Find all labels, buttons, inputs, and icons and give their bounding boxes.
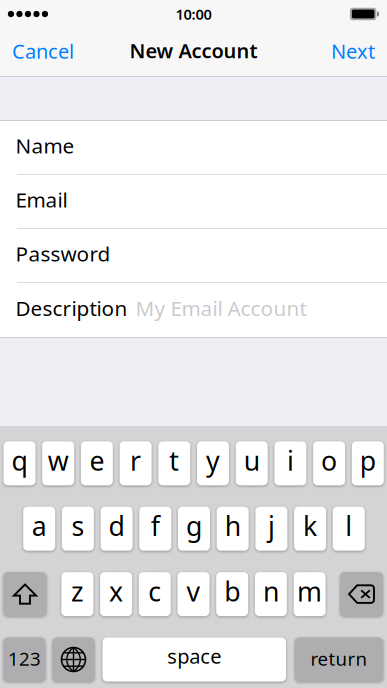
staticText: g — [186, 507, 202, 544]
button[interactable]: c — [139, 572, 171, 616]
staticText: p — [360, 442, 376, 478]
button[interactable]: Name — [0, 121, 387, 175]
staticText: Name — [15, 131, 74, 159]
staticText: return — [310, 646, 367, 671]
staticText: h — [225, 507, 241, 544]
staticText: b — [224, 573, 240, 609]
staticText: e — [89, 442, 104, 478]
button[interactable]: a — [23, 507, 55, 551]
staticText: Description — [15, 294, 127, 322]
staticText: w — [48, 442, 69, 478]
button[interactable]: w — [42, 441, 74, 485]
staticText: u — [244, 442, 260, 478]
button[interactable]: r — [120, 441, 152, 485]
button[interactable]: n — [255, 572, 287, 616]
button[interactable]: l — [333, 507, 365, 551]
button[interactable]: b — [216, 572, 248, 616]
button[interactable]: Cancel — [4, 31, 82, 74]
staticText: o — [321, 442, 337, 478]
button[interactable]: d — [101, 507, 133, 551]
staticText: a — [32, 507, 47, 544]
button[interactable]: j — [255, 507, 287, 551]
button[interactable]: Shift — [3, 572, 46, 616]
button[interactable]: x — [100, 572, 132, 616]
button[interactable]: i — [274, 441, 306, 485]
staticText: q — [11, 442, 27, 478]
button[interactable]: Password — [0, 229, 387, 283]
button[interactable]: return — [295, 637, 383, 681]
staticText: Email — [15, 185, 67, 213]
button[interactable]: v — [177, 572, 209, 616]
button[interactable]: q — [3, 441, 35, 485]
button[interactable]: o — [313, 441, 345, 485]
staticText: j — [268, 507, 275, 544]
button[interactable]: m — [294, 572, 326, 616]
staticText: Password — [15, 239, 110, 267]
staticText: k — [303, 507, 317, 544]
staticText: n — [263, 573, 279, 609]
staticText: y — [206, 442, 220, 478]
button[interactable]: f — [139, 507, 171, 551]
button[interactable]: p — [352, 441, 384, 485]
staticText: t — [169, 442, 179, 478]
staticText: v — [186, 573, 200, 609]
staticText: My Email Account — [135, 294, 306, 322]
staticText: z — [71, 573, 84, 609]
staticText: 123 — [8, 646, 41, 671]
button[interactable]: e — [81, 441, 113, 485]
staticText: Cancel — [12, 37, 74, 65]
staticText: i — [287, 442, 294, 478]
button[interactable]: Description — [0, 283, 387, 337]
staticText: d — [109, 507, 125, 544]
button[interactable]: s — [62, 507, 94, 551]
staticText: l — [345, 507, 352, 544]
button[interactable]: g — [178, 507, 210, 551]
staticText: space — [167, 642, 221, 670]
button[interactable]: u — [236, 441, 268, 485]
button[interactable]: Next keyboard — [52, 637, 94, 681]
button[interactable]: Next — [323, 31, 383, 74]
button[interactable]: k — [294, 507, 326, 551]
button[interactable]: space — [102, 637, 286, 681]
button[interactable]: Delete — [340, 572, 383, 616]
button[interactable]: t — [158, 441, 190, 485]
staticText: New Account — [129, 37, 257, 64]
staticText: s — [71, 507, 84, 544]
staticText: f — [151, 507, 160, 544]
button[interactable]: h — [217, 507, 249, 551]
button[interactable]: y — [197, 441, 229, 485]
staticText: r — [130, 442, 141, 478]
button[interactable]: Email — [0, 175, 387, 229]
staticText: x — [109, 573, 123, 609]
staticText: c — [148, 573, 161, 609]
button[interactable]: 123 — [3, 637, 45, 681]
staticText: 10:00 — [175, 4, 211, 24]
staticText: m — [297, 573, 322, 609]
button[interactable]: z — [61, 572, 93, 616]
staticText: Next — [331, 37, 375, 65]
